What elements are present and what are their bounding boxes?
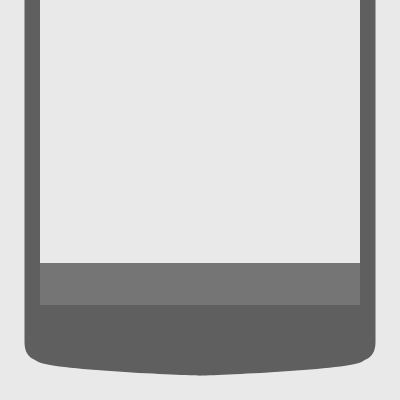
other: Phone: [0, 0, 400, 400]
